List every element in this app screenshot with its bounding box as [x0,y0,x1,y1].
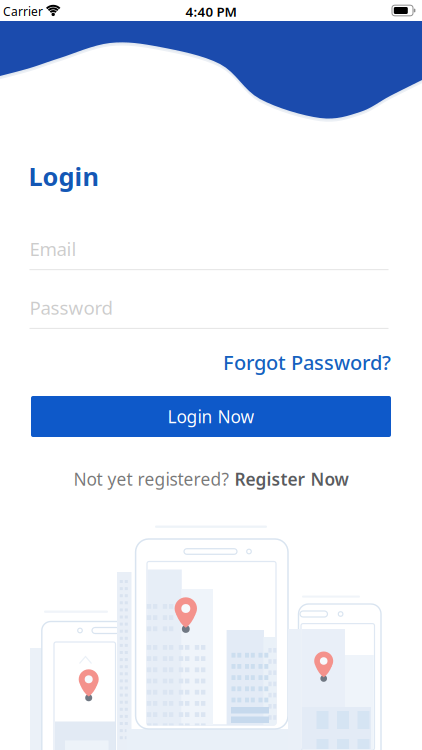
button[interactable]: Register Now [234,467,348,490]
staticText: Login Now [167,405,254,428]
button[interactable]: Forgot Password? [223,349,391,376]
button[interactable]: Login Now [31,396,391,437]
staticText: Carrier [3,3,43,19]
staticText: Not yet registered? [73,467,229,490]
button[interactable]: Email [29,242,388,264]
staticText: 4:40 PM [185,3,236,20]
staticText: Email [29,236,76,261]
button[interactable]: Password [29,299,388,325]
staticText: Password [29,295,112,320]
staticText: Register Now [234,467,348,490]
staticText: Login [28,159,98,193]
staticText: Forgot Password? [223,349,391,376]
